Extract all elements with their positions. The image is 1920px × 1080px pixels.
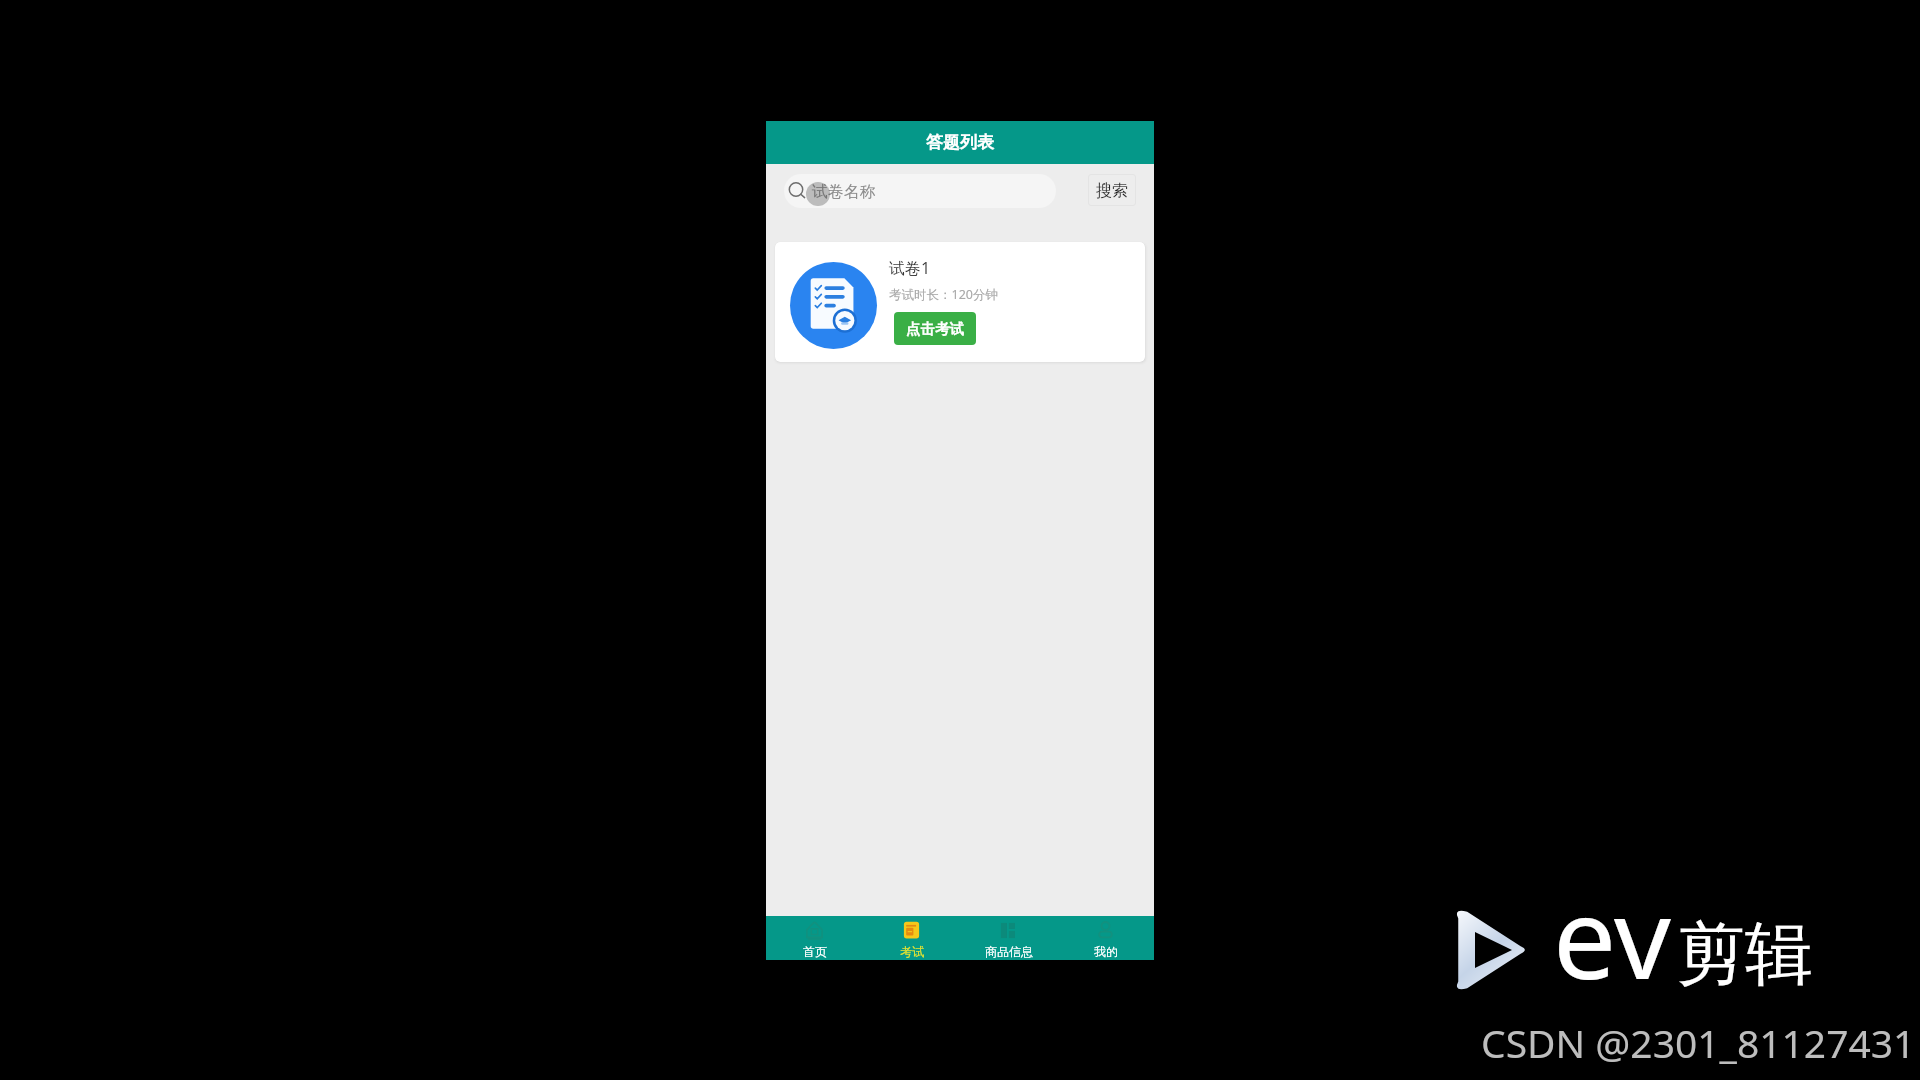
button[interactable]: 我的 <box>1057 916 1154 960</box>
staticText: 答题列表 <box>926 132 994 153</box>
button[interactable]: 试卷 <box>775 242 1145 362</box>
staticText: 剪辑 <box>1677 912 1813 998</box>
other: 试卷 <box>790 262 877 349</box>
other: 首页 <box>805 921 824 940</box>
other: 我的 <box>1096 921 1115 940</box>
other: 商品信息 <box>999 921 1018 940</box>
staticText: 商品信息 <box>985 944 1033 959</box>
staticText: 试卷名称 <box>812 182 876 202</box>
staticText: 考试时长：120分钟 <box>889 286 998 303</box>
button[interactable]: 搜索 <box>1088 174 1136 206</box>
button[interactable]: 试卷名称 <box>784 174 1056 208</box>
other: 考试 <box>902 921 921 940</box>
staticText: 我的 <box>1094 944 1118 959</box>
button[interactable]: 考试 <box>863 916 960 960</box>
staticText: 考试 <box>900 944 924 959</box>
button[interactable]: 首页 <box>766 916 863 960</box>
staticText: 试卷1 <box>889 257 931 279</box>
button[interactable]: 点击考试 <box>894 312 976 345</box>
staticText: 点击考试 <box>906 320 964 338</box>
staticText: 搜索 <box>1096 181 1128 201</box>
button[interactable]: 商品信息 <box>960 916 1057 960</box>
staticText: 首页 <box>803 944 827 959</box>
staticText: CSDN @2301_81127431 <box>1481 1016 1916 1069</box>
staticText: ev <box>1553 859 1671 1012</box>
